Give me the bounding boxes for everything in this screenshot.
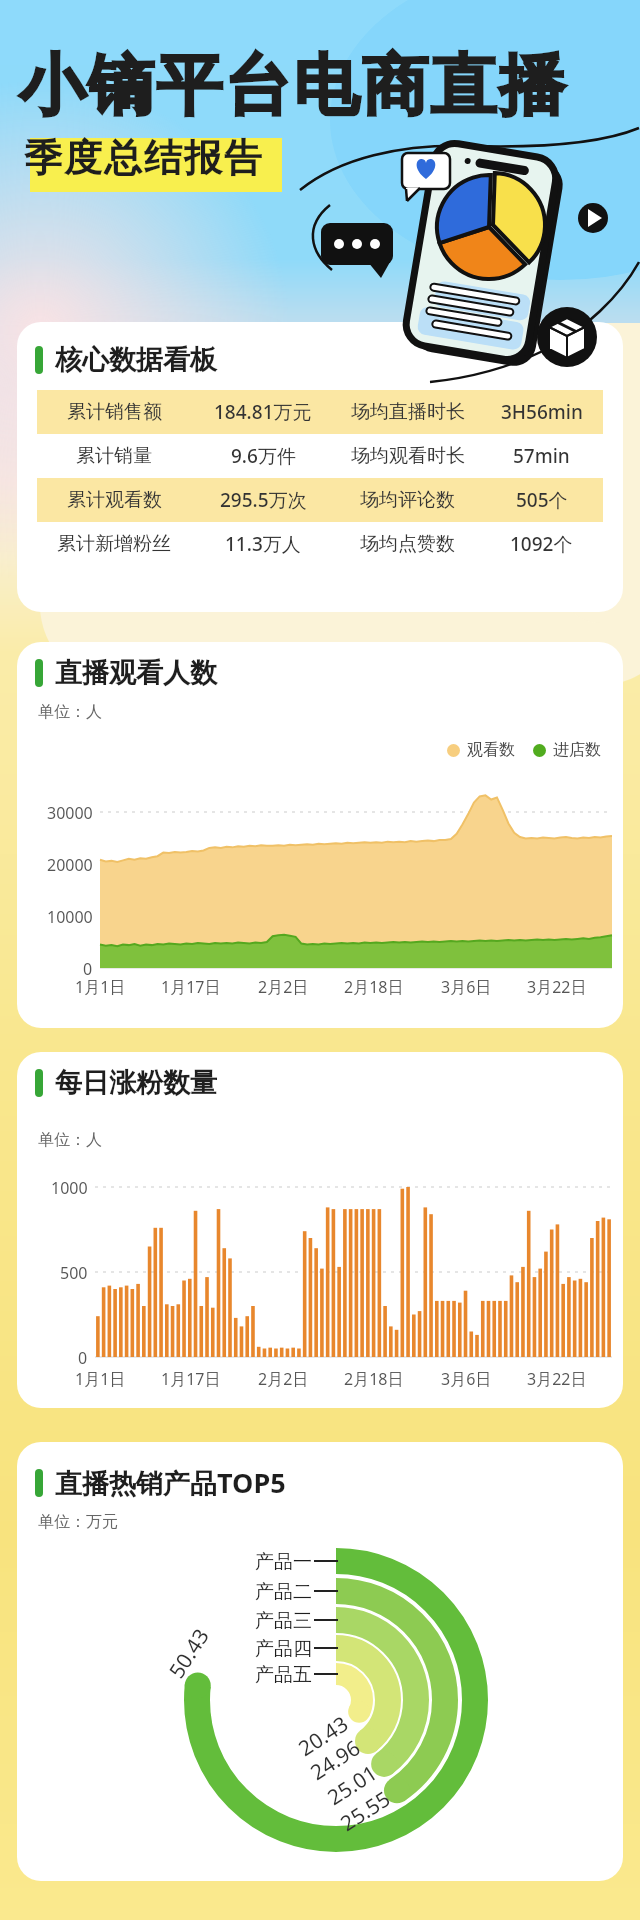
staticText: 场均观看时长	[351, 444, 465, 468]
staticText: 产品一	[255, 1550, 312, 1574]
staticText: 1月1日	[75, 976, 126, 998]
staticText: 25.55	[335, 1784, 393, 1834]
staticText: 2月18日	[344, 976, 404, 998]
staticText: 1月17日	[161, 1368, 221, 1390]
staticText: 单位：万元	[38, 1512, 118, 1532]
staticText: 1月17日	[161, 976, 221, 998]
staticText: 9.6万件	[231, 443, 296, 469]
staticText: 184.81万元	[214, 399, 312, 425]
staticText: 累计观看数	[67, 488, 162, 512]
staticText: 11.3万人	[225, 531, 301, 557]
staticText: 直播热销产品TOP5	[55, 1464, 286, 1501]
button[interactable]: 累计新增粉丝	[37, 522, 603, 566]
staticText: 产品五	[255, 1663, 312, 1687]
staticText: 50.43	[162, 1623, 212, 1681]
staticText: 1月1日	[75, 1368, 126, 1390]
staticText: 20000	[47, 854, 93, 876]
staticText: 3月6日	[441, 976, 492, 998]
staticText: 3月6日	[441, 1368, 492, 1390]
staticText: 0	[83, 958, 93, 980]
staticText: 1092个	[510, 531, 573, 557]
button[interactable]: 观看数	[447, 740, 601, 760]
staticText: 57min	[513, 443, 570, 469]
staticText: 0	[78, 1347, 88, 1369]
staticText: 单位：人	[38, 1130, 102, 1150]
staticText: 3H56min	[501, 399, 583, 425]
staticText: 累计新增粉丝	[57, 532, 171, 556]
staticText: 产品四	[255, 1637, 312, 1661]
staticText: 场均评论数	[360, 488, 455, 512]
staticText: 季度总结报告	[23, 134, 263, 182]
staticText: 累计销量	[76, 444, 152, 468]
staticText: 1000	[51, 1177, 88, 1199]
button[interactable]: 累计销量	[37, 434, 603, 478]
staticText: 直播观看人数	[55, 656, 217, 690]
staticText: 3月22日	[527, 1368, 587, 1390]
staticText: 场均直播时长	[351, 400, 465, 424]
staticText: 产品二	[255, 1580, 312, 1604]
staticText: 场均点赞数	[360, 532, 455, 556]
staticText: 观看数	[467, 740, 515, 760]
staticText: 累计销售额	[67, 400, 162, 424]
staticText: 30000	[47, 802, 93, 824]
staticText: 2月18日	[344, 1368, 404, 1390]
staticText: 进店数	[553, 740, 601, 760]
staticText: 10000	[47, 906, 93, 928]
staticText: 小镝平台电商直播	[18, 44, 566, 127]
staticText: 核心数据看板	[55, 343, 217, 377]
staticText: 500	[60, 1262, 88, 1284]
staticText: 25.01	[322, 1758, 380, 1808]
staticText: 20.43	[293, 1709, 351, 1759]
staticText: 3月22日	[527, 976, 587, 998]
staticText: 2月2日	[258, 1368, 309, 1390]
staticText: 每日涨粉数量	[55, 1066, 217, 1100]
button[interactable]: 累计销售额	[37, 390, 603, 434]
staticText: 24.96	[305, 1733, 363, 1783]
staticText: 单位：人	[38, 702, 102, 722]
button[interactable]: 累计观看数	[37, 478, 603, 522]
staticText: 505个	[516, 487, 568, 513]
staticText: 2月2日	[258, 976, 309, 998]
staticText: 产品三	[255, 1609, 312, 1633]
staticText: 295.5万次	[220, 487, 307, 513]
